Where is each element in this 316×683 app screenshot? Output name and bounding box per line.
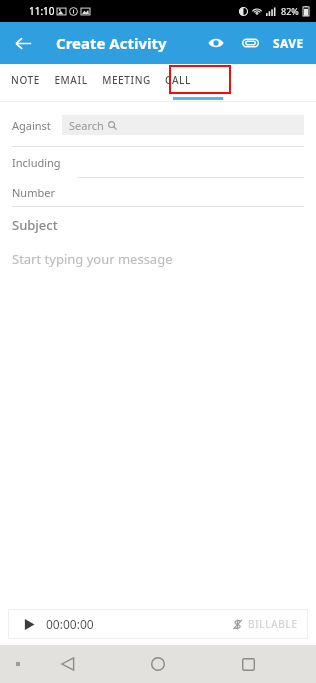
button[interactable]: Preview bbox=[201, 28, 231, 58]
staticText: 00:00:00 bbox=[46, 616, 94, 632]
button[interactable]: Including bbox=[0, 147, 316, 177]
button[interactable]: CALL bbox=[165, 64, 205, 97]
staticText: BILLABLE bbox=[248, 617, 298, 631]
staticText: Create Activity bbox=[56, 33, 167, 53]
staticText: Subject bbox=[12, 216, 58, 234]
button[interactable]: Start typing your message bbox=[0, 250, 316, 268]
button[interactable]: Back bbox=[6, 26, 40, 60]
button[interactable]: Home bbox=[136, 645, 180, 683]
button[interactable]: Play bbox=[18, 613, 40, 635]
staticText: EMAIL bbox=[54, 73, 88, 87]
button[interactable]: Attach bbox=[235, 28, 265, 58]
button[interactable]: NOTE bbox=[11, 64, 54, 97]
staticText: Start typing your message bbox=[12, 250, 173, 268]
button[interactable]: Recents bbox=[226, 645, 270, 683]
button[interactable]: MEETING bbox=[102, 64, 165, 97]
button[interactable]: Against bbox=[0, 109, 316, 141]
button[interactable]: BILLABLE bbox=[230, 613, 300, 635]
staticText: Search bbox=[69, 118, 104, 133]
staticText: Against bbox=[12, 118, 51, 133]
button[interactable]: SAVE bbox=[267, 29, 310, 57]
staticText: 11:10 bbox=[29, 4, 55, 18]
staticText: Including bbox=[12, 155, 61, 170]
button[interactable]: Number bbox=[0, 178, 316, 206]
staticText: SAVE bbox=[273, 35, 304, 51]
button[interactable]: Subject bbox=[0, 216, 316, 234]
staticText: 82% bbox=[281, 5, 299, 17]
staticText: NOTE bbox=[11, 73, 40, 87]
staticText: CALL bbox=[165, 73, 191, 87]
staticText: Number bbox=[12, 185, 55, 200]
button[interactable]: EMAIL bbox=[54, 64, 102, 97]
staticText: MEETING bbox=[102, 73, 151, 87]
button[interactable]: Back bbox=[46, 645, 90, 683]
